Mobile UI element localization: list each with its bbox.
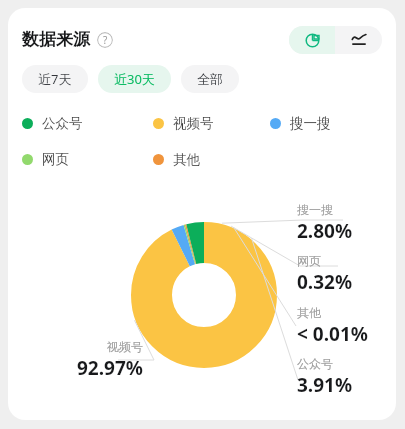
button[interactable]: 搜一搜 [270, 113, 331, 134]
button[interactable]: 其他 [153, 149, 200, 170]
button[interactable]: 帮助 [97, 32, 113, 48]
button[interactable]: 全部 [181, 65, 239, 93]
staticText: 视频号 [107, 339, 143, 354]
staticText: 近30天 [114, 70, 155, 88]
staticText: 网页 [297, 253, 321, 268]
staticText: 全部 [197, 71, 223, 87]
staticText: ? [103, 33, 108, 47]
staticText: 92.97% [77, 355, 143, 381]
staticText: 0.32% [297, 269, 353, 295]
staticText: 2.80% [297, 218, 353, 244]
staticText: 搜一搜 [290, 115, 331, 132]
button[interactable]: 折线图 [335, 26, 382, 54]
staticText: 搜一搜 [297, 202, 333, 217]
staticText: < 0.01% [297, 321, 368, 347]
staticText: 近7天 [38, 70, 72, 88]
staticText: 视频号 [173, 115, 214, 132]
staticText: 网页 [42, 151, 69, 168]
button[interactable]: 近30天 [98, 65, 171, 93]
staticText: 其他 [297, 305, 321, 320]
button[interactable]: 网页 [22, 149, 69, 170]
staticText: 公众号 [42, 115, 83, 132]
button[interactable]: 公众号 [22, 113, 83, 134]
button[interactable]: 视频号 [153, 113, 214, 134]
staticText: 公众号 [297, 356, 333, 371]
staticText: 其他 [173, 151, 200, 168]
button[interactable]: 近7天 [22, 65, 88, 93]
staticText: 数据来源 [22, 29, 90, 50]
button[interactable]: 饼图 [289, 26, 335, 54]
staticText: 3.91% [297, 372, 353, 398]
